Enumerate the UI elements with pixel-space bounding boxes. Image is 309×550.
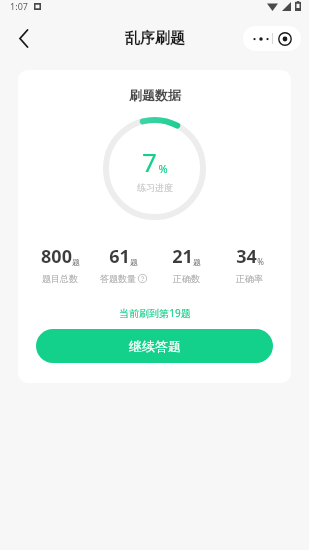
button[interactable]: More options [243, 26, 301, 51]
staticText: 800 [41, 244, 72, 269]
staticText: 7 [142, 144, 157, 179]
staticText: 正确数 [173, 273, 200, 284]
staticText: 继续答题 [129, 338, 181, 354]
staticText: 刷题数据 [129, 87, 181, 103]
staticText: 乱序刷题 [125, 29, 185, 48]
staticText: 题 [130, 257, 138, 267]
button[interactable]: Help [138, 274, 147, 283]
button[interactable]: 继续答题 [36, 329, 273, 363]
staticText: 21 [172, 244, 193, 269]
staticText: 练习进度 [137, 182, 173, 193]
staticText: 正确率 [236, 273, 263, 284]
staticText: 题 [193, 257, 201, 267]
button[interactable]: Back [8, 22, 40, 54]
staticText: % [257, 256, 264, 267]
staticText: 34 [236, 244, 257, 269]
staticText: 61 [109, 244, 130, 269]
staticText: 1:07 [10, 0, 28, 12]
staticText: % [158, 161, 168, 176]
staticText: 题目总数 [42, 273, 78, 284]
staticText: 题 [72, 257, 80, 267]
staticText: 答题数量 [100, 273, 136, 284]
staticText: 当前刷到第19题 [119, 306, 191, 320]
